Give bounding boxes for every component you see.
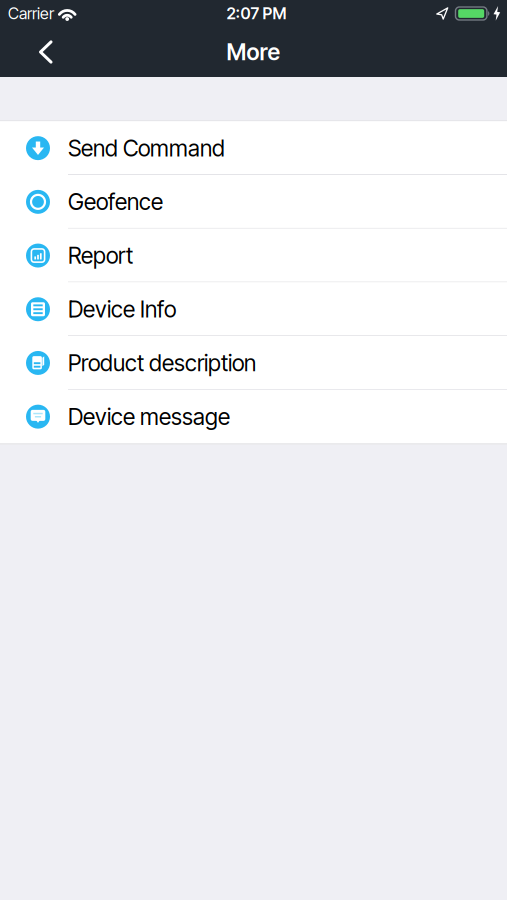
- staticText: Product description: [68, 350, 256, 376]
- staticText: Report: [68, 242, 133, 269]
- staticText: Geofence: [68, 188, 163, 215]
- button[interactable]: Device message: [0, 390, 507, 443]
- button[interactable]: Product description: [0, 336, 507, 390]
- staticText: More: [226, 39, 280, 65]
- staticText: Device message: [68, 403, 230, 430]
- button[interactable]: Device Info: [0, 282, 507, 336]
- staticText: Send Command: [68, 135, 225, 161]
- button[interactable]: Report: [0, 229, 507, 282]
- button[interactable]: Geofence: [0, 175, 507, 229]
- button[interactable]: Send Command: [0, 121, 507, 175]
- button[interactable]: Back: [0, 27, 53, 77]
- staticText: Device Info: [68, 296, 176, 323]
- staticText: 2:07 PM: [226, 4, 286, 23]
- staticText: Carrier: [8, 4, 54, 23]
